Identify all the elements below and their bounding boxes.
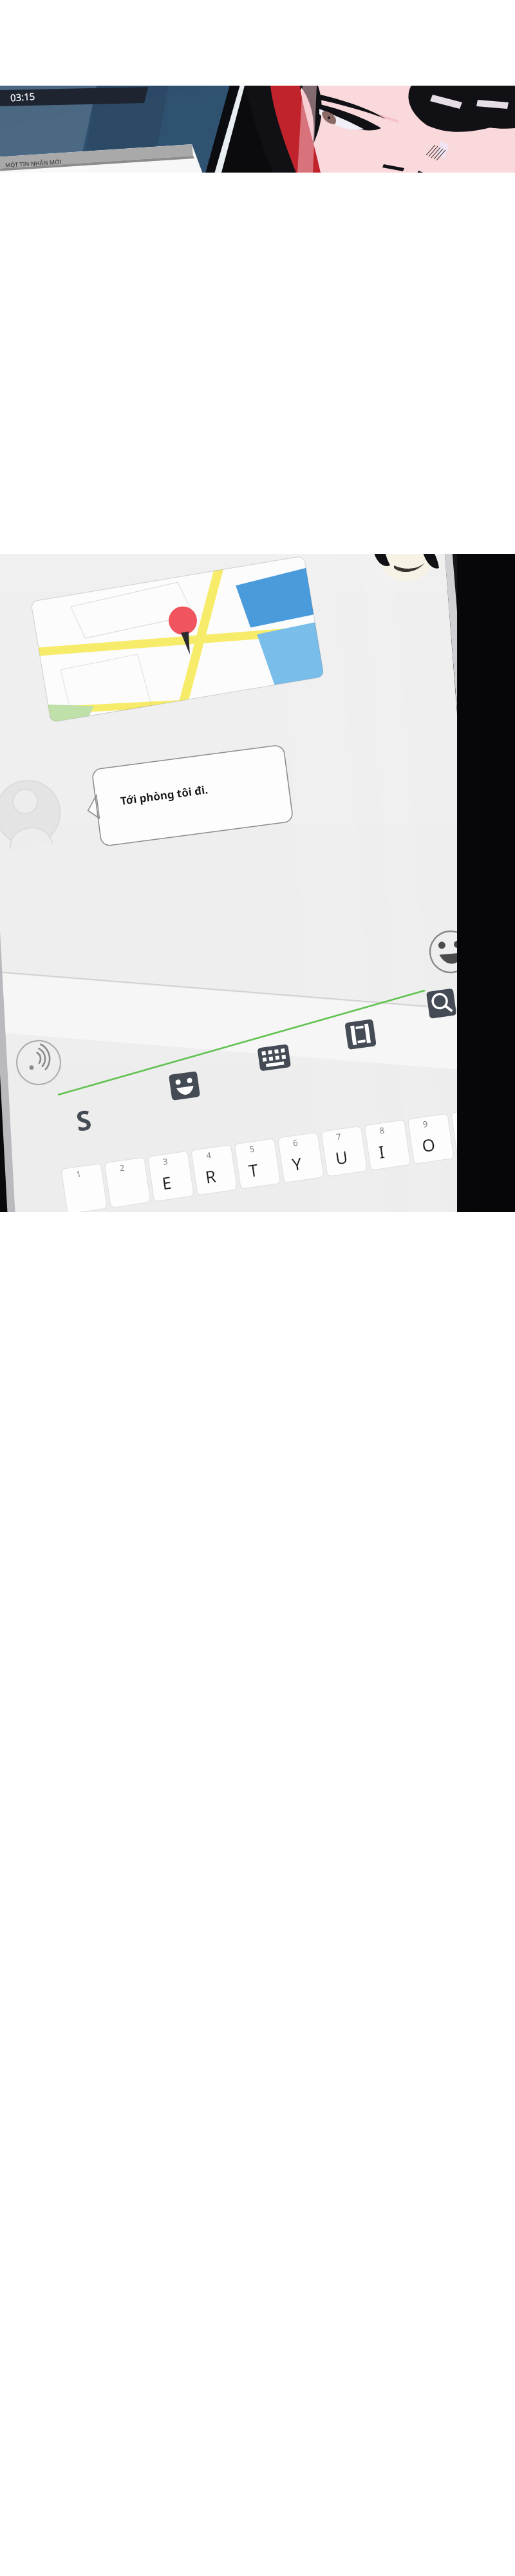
- button[interactable]: Webtoon episode page: [0, 0, 515, 2576]
